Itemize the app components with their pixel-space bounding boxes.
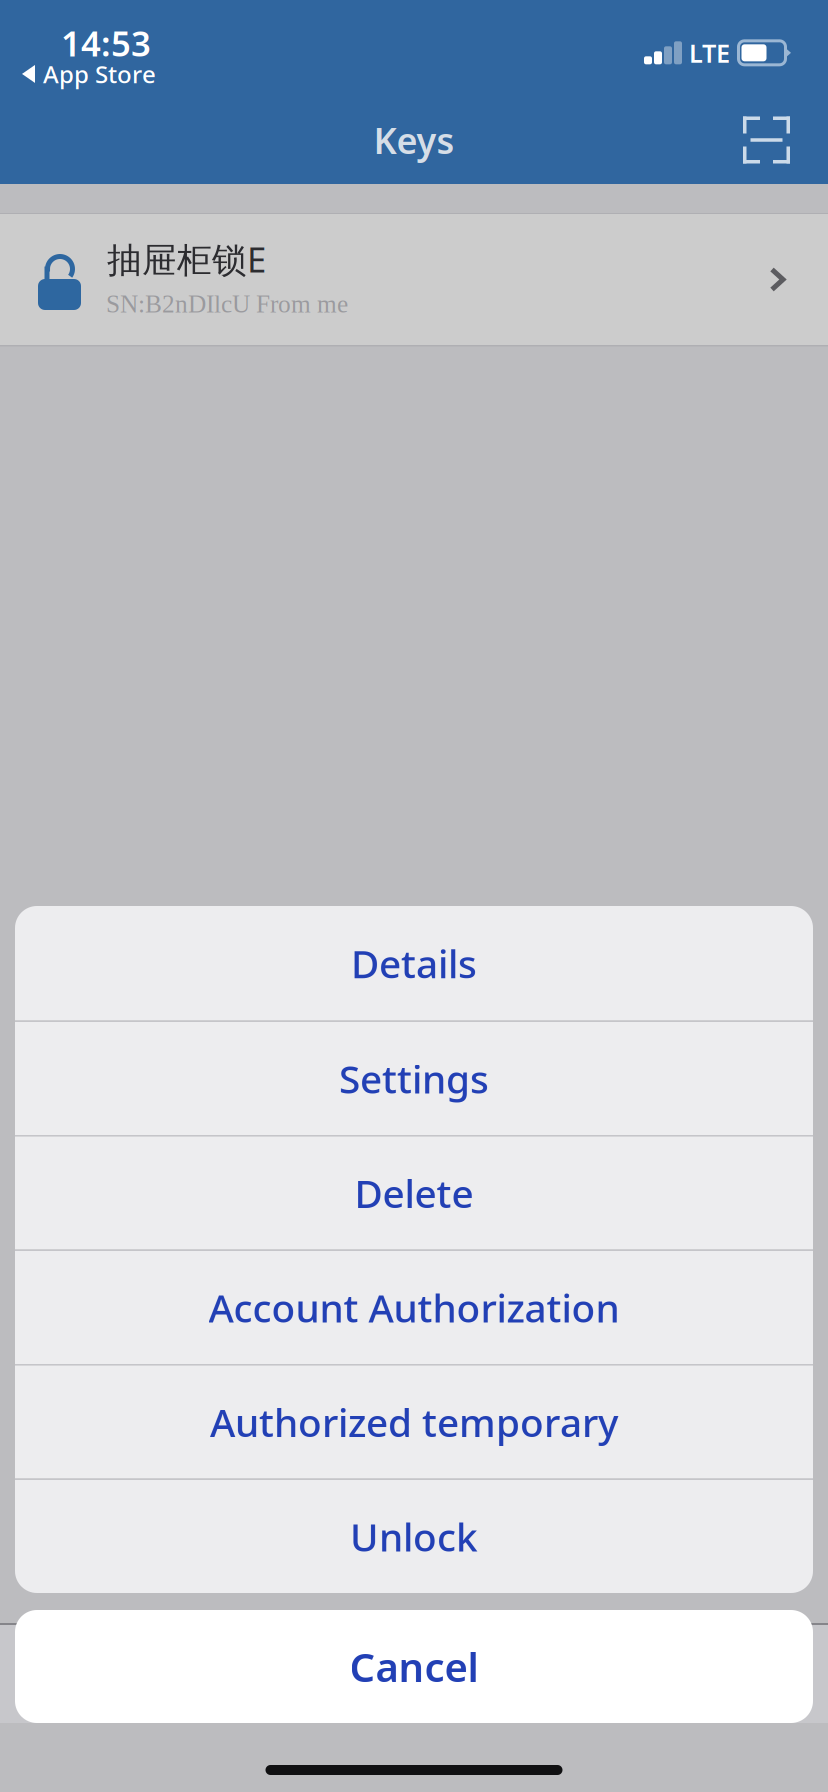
button[interactable]: Account Authorization xyxy=(15,1249,813,1364)
staticText: Details xyxy=(351,938,477,989)
button[interactable]: Authorized temporary xyxy=(15,1364,813,1478)
button[interactable]: Details xyxy=(15,906,813,1020)
staticText: 抽屉柜锁E xyxy=(107,236,266,282)
staticText: Account Authorization xyxy=(208,1282,619,1333)
staticText: Settings xyxy=(339,1053,489,1104)
staticText: 14:53 xyxy=(61,20,151,66)
button[interactable]: Cancel xyxy=(0,1610,828,1723)
staticText: Unlock xyxy=(350,1511,478,1562)
staticText: Delete xyxy=(354,1167,473,1219)
button[interactable]: Unlock xyxy=(15,1478,813,1593)
staticText: SN:B2nDIlcU From me xyxy=(106,290,348,318)
button[interactable]: Delete xyxy=(15,1135,813,1249)
staticText: LTE xyxy=(689,36,730,70)
button[interactable]: 抽屉柜锁E xyxy=(0,214,828,345)
staticText: Authorized temporary xyxy=(210,1396,618,1448)
staticText: App Store xyxy=(43,58,156,90)
button[interactable]: Settings xyxy=(15,1020,813,1135)
button[interactable]: Scan QR code xyxy=(743,116,790,163)
staticText: Cancel xyxy=(349,1640,478,1693)
staticText: Keys xyxy=(373,116,454,164)
